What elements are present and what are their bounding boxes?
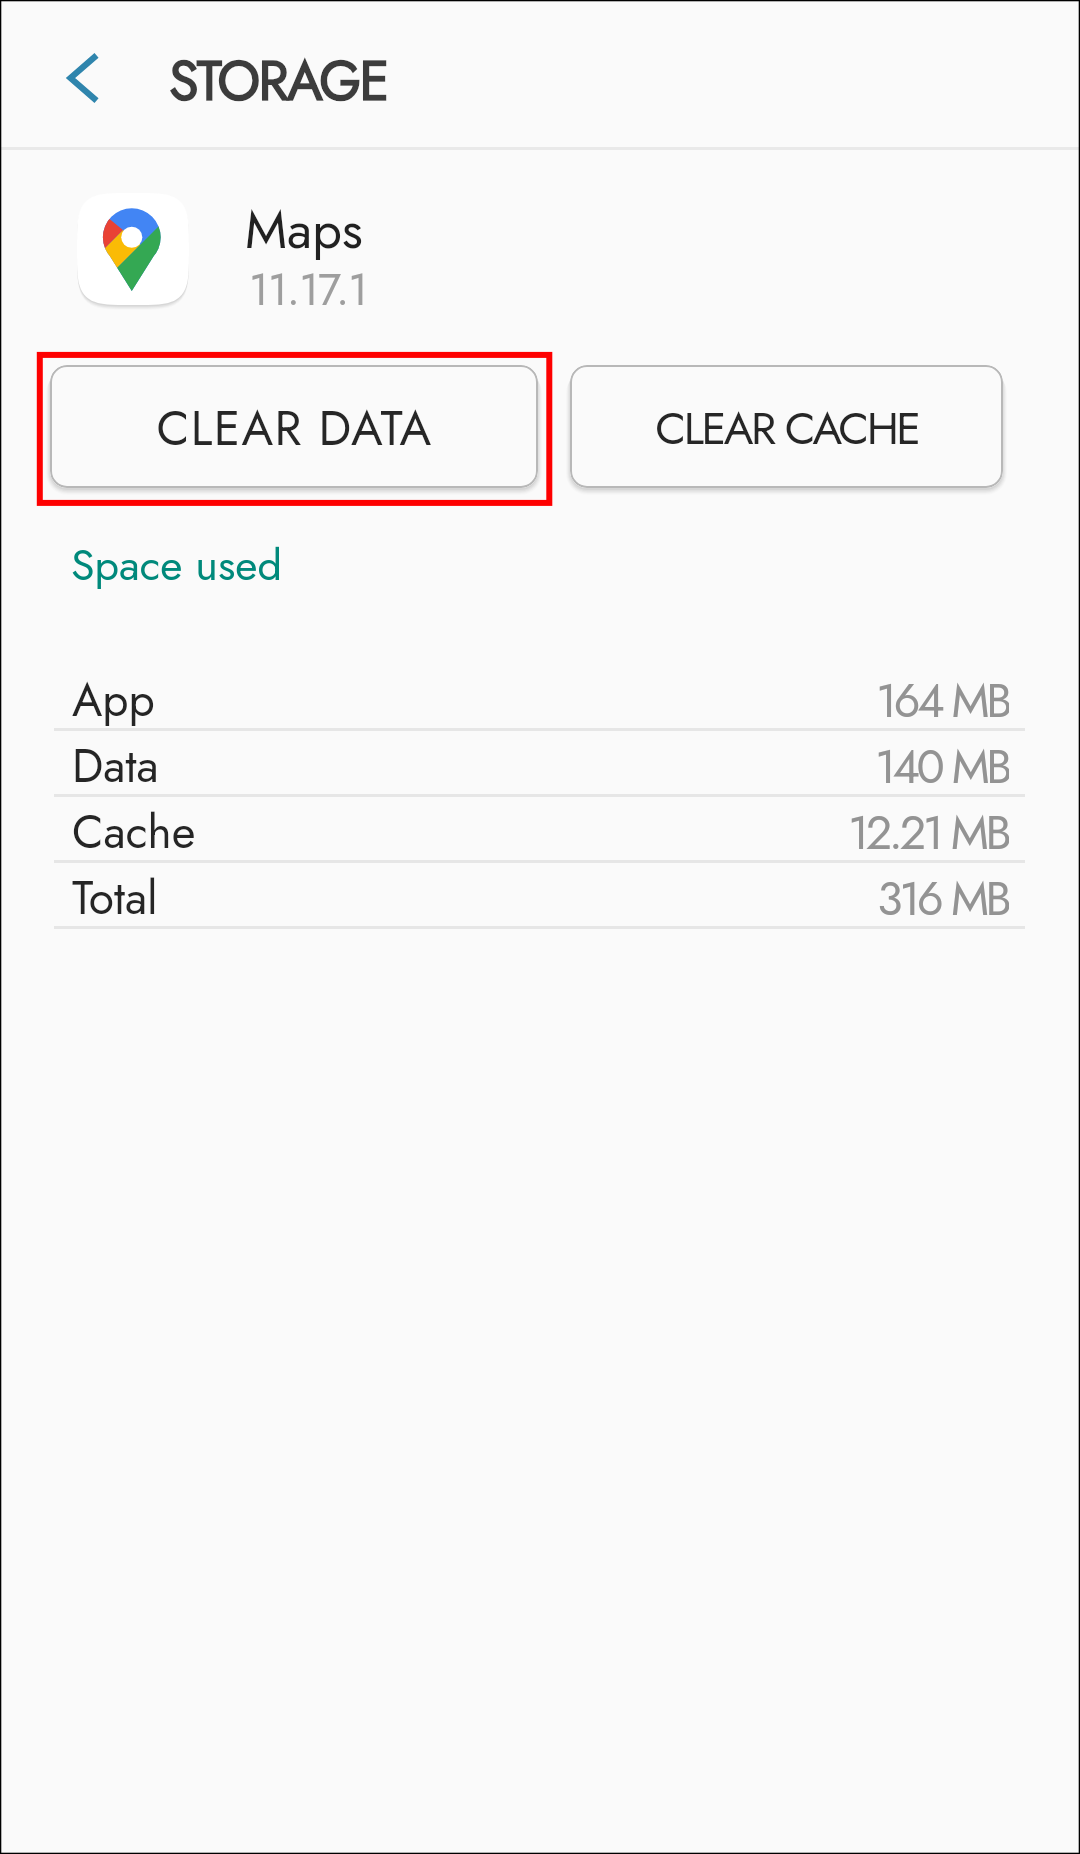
staticText: Maps xyxy=(245,192,363,267)
staticText: CLEAR CACHE xyxy=(655,396,919,461)
button[interactable]: CLEAR CACHE xyxy=(570,365,1003,488)
staticText: 140 MB xyxy=(875,733,1009,796)
button[interactable]: Navigate up xyxy=(37,32,129,124)
staticText: 164 MB xyxy=(876,667,1009,730)
staticText: CLEAR DATA xyxy=(156,394,433,463)
staticText: Space used xyxy=(71,534,282,596)
staticText: Data xyxy=(72,733,159,796)
staticText: Cache xyxy=(72,799,196,862)
staticText: Total xyxy=(72,865,158,928)
staticText: 316 MB xyxy=(877,865,1009,928)
staticText: 11.17.1 xyxy=(249,258,368,322)
staticText: STORAGE xyxy=(169,42,388,120)
staticText: App xyxy=(72,667,155,730)
button[interactable]: CLEAR DATA xyxy=(50,365,538,488)
staticText: 12.21 MB xyxy=(848,799,1009,862)
